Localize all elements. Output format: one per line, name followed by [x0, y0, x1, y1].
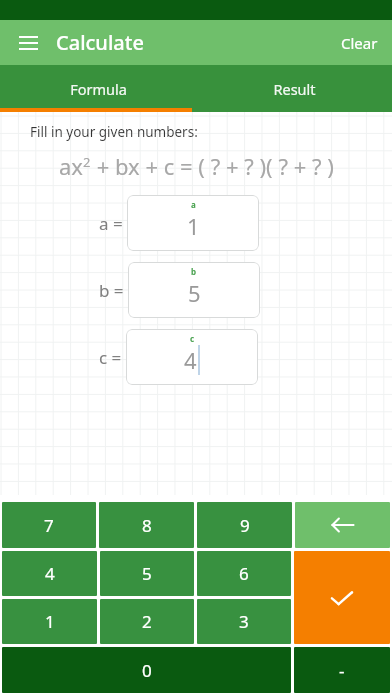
button[interactable]: Clear	[327, 23, 392, 63]
button[interactable]: 3	[197, 599, 291, 644]
staticText: ax	[59, 151, 83, 181]
staticText: 2	[142, 610, 152, 633]
staticText: Fill in your given numbers:	[30, 123, 198, 141]
button[interactable]: -	[294, 647, 390, 693]
button[interactable]: Formula	[0, 65, 196, 112]
staticText: 1	[187, 211, 200, 241]
staticText: b	[191, 266, 197, 277]
button[interactable]: Confirm	[294, 551, 390, 644]
staticText: 1	[45, 610, 55, 633]
staticText: Result	[273, 79, 316, 99]
staticText: b =	[99, 279, 124, 302]
staticText: c =	[99, 346, 122, 369]
staticText: Calculate	[56, 29, 144, 56]
button[interactable]: 0	[2, 647, 291, 693]
staticText: 5	[142, 562, 152, 585]
button[interactable]: a	[127, 195, 259, 251]
staticText: 7	[44, 514, 54, 537]
staticText: Clear	[341, 33, 378, 53]
button[interactable]: 1	[2, 599, 97, 644]
staticText: a	[191, 199, 196, 210]
button[interactable]: 8	[99, 502, 194, 548]
staticText: Formula	[70, 79, 127, 99]
staticText: 6	[239, 562, 249, 585]
button[interactable]: b	[128, 262, 260, 318]
button[interactable]: 4	[2, 551, 97, 596]
button[interactable]: Open navigation menu	[8, 23, 48, 63]
staticText: 0	[142, 659, 152, 682]
staticText: + bx + c = ( ? + ? )( ? + ? )	[91, 151, 334, 181]
button[interactable]: 6	[197, 551, 291, 596]
staticText: 8	[142, 514, 152, 537]
staticText: 5	[188, 278, 201, 308]
staticText: 2	[83, 153, 91, 171]
staticText: 9	[240, 514, 250, 537]
button[interactable]: Result	[196, 65, 392, 112]
button[interactable]: 7	[2, 502, 96, 548]
staticText: a =	[99, 212, 123, 235]
button[interactable]: Backspace	[295, 502, 390, 548]
button[interactable]: c	[126, 329, 258, 385]
staticText: 4	[45, 562, 55, 585]
staticText: -	[339, 659, 345, 682]
staticText: c	[190, 333, 195, 344]
staticText: 3	[239, 610, 249, 633]
button[interactable]: 2	[100, 599, 194, 644]
staticText: 4	[184, 345, 197, 375]
button[interactable]: 9	[197, 502, 292, 548]
button[interactable]: 5	[100, 551, 194, 596]
